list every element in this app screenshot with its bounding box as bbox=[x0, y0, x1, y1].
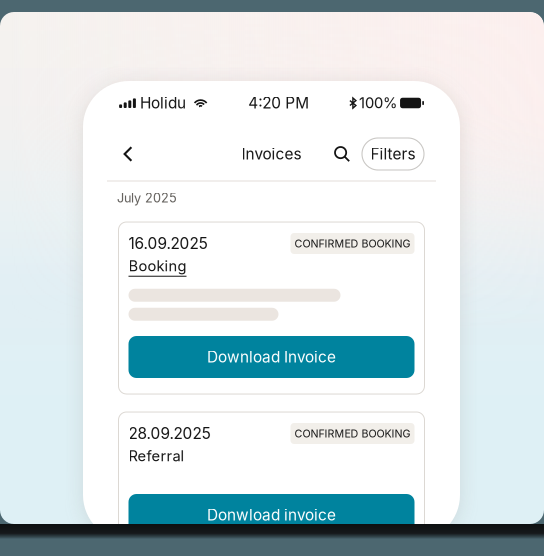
staticText: 4:20 PM bbox=[248, 94, 309, 112]
staticText: Filters bbox=[370, 145, 415, 163]
staticText: Donwload invoice bbox=[207, 506, 336, 524]
staticText: CONFIRMED BOOKING bbox=[294, 237, 410, 250]
staticText: Download Invoice bbox=[207, 348, 336, 366]
button[interactable]: Back bbox=[113, 135, 143, 173]
staticText: July 2025 bbox=[117, 190, 177, 206]
button[interactable]: Donwload invoice bbox=[128, 494, 414, 536]
staticText: 100% bbox=[359, 94, 397, 112]
button[interactable]: Filters bbox=[362, 138, 424, 170]
staticText: Booking bbox=[128, 257, 186, 275]
button[interactable]: Search bbox=[327, 135, 357, 173]
button[interactable]: Download Invoice bbox=[128, 336, 414, 378]
staticText: Referral bbox=[128, 447, 184, 465]
staticText: Invoices bbox=[241, 145, 301, 163]
staticText: 16.09.2025 bbox=[128, 234, 207, 253]
staticText: 28.09.2025 bbox=[128, 424, 210, 443]
staticText: Holidu bbox=[140, 94, 186, 112]
staticText: CONFIRMED BOOKING bbox=[294, 427, 410, 440]
